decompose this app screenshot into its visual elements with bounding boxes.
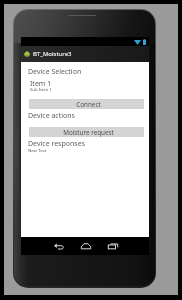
button[interactable]: Back: [51, 237, 67, 255]
staticText: Item 1: [30, 79, 52, 89]
staticText: Device actions: [28, 111, 75, 121]
button[interactable]: Home: [78, 237, 94, 255]
button[interactable]: Moisture request: [29, 127, 144, 137]
button[interactable]: Connect: [29, 99, 144, 109]
staticText: Device Selection: [28, 67, 82, 77]
staticText: Device responses: [28, 139, 85, 149]
staticText: BT_Moisture3: [33, 50, 72, 58]
button[interactable]: Recent apps: [105, 237, 121, 255]
staticText: Connect: [76, 100, 101, 109]
staticText: New Text: [28, 147, 47, 153]
staticText: Sub Item 1: [30, 86, 52, 92]
staticText: Moisture request: [63, 128, 114, 137]
